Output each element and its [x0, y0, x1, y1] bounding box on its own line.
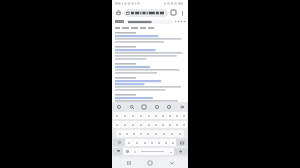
button[interactable]	[137, 121, 145, 128]
button[interactable]: Tabs	[169, 8, 178, 17]
button[interactable]	[180, 112, 187, 119]
button[interactable]: Home	[145, 158, 155, 168]
button[interactable]	[155, 139, 162, 146]
button[interactable]	[152, 121, 159, 128]
button[interactable]	[148, 26, 154, 30]
button[interactable]	[173, 121, 180, 128]
button[interactable]: Emoji	[115, 103, 122, 110]
button[interactable]	[160, 130, 168, 137]
button[interactable]	[166, 112, 173, 119]
button[interactable]	[115, 26, 120, 30]
button[interactable]	[152, 130, 160, 137]
button[interactable]	[176, 130, 184, 137]
button[interactable]	[148, 139, 155, 146]
button[interactable]: Settings	[165, 103, 172, 110]
button[interactable]	[167, 148, 174, 155]
button[interactable]: Search	[128, 103, 135, 110]
button[interactable]	[140, 26, 146, 30]
button[interactable]: Clipboard	[140, 103, 147, 110]
button[interactable]: Shift	[113, 139, 125, 146]
button[interactable]: Back	[167, 158, 177, 168]
button[interactable]: More options	[178, 9, 186, 17]
button[interactable]: Language	[123, 148, 131, 155]
button[interactable]	[137, 112, 145, 119]
button[interactable]	[141, 139, 148, 146]
button[interactable]: Backspace	[176, 139, 187, 146]
button[interactable]	[115, 32, 185, 46]
button[interactable]	[145, 121, 152, 128]
button[interactable]	[122, 26, 129, 30]
button[interactable]: More	[178, 103, 185, 110]
button[interactable]	[115, 77, 185, 94]
button[interactable]	[131, 148, 138, 155]
button[interactable]	[121, 121, 129, 128]
button[interactable]	[137, 130, 144, 137]
button[interactable]: Symbols	[113, 148, 123, 155]
button[interactable]	[126, 20, 173, 24]
button[interactable]: Space	[138, 148, 167, 155]
button[interactable]: Enter	[174, 148, 187, 155]
button[interactable]: Home	[114, 8, 123, 17]
button[interactable]	[131, 26, 138, 30]
button[interactable]	[129, 121, 137, 128]
button[interactable]	[130, 130, 137, 137]
button[interactable]	[133, 139, 141, 146]
button[interactable]	[115, 94, 185, 102]
button[interactable]	[116, 130, 123, 137]
button[interactable]	[152, 112, 159, 119]
button[interactable]	[121, 112, 129, 119]
button[interactable]	[169, 139, 176, 146]
button[interactable]	[124, 9, 168, 17]
button[interactable]	[129, 112, 137, 119]
button[interactable]	[113, 112, 121, 119]
button[interactable]	[159, 121, 166, 128]
button[interactable]	[162, 139, 169, 146]
button[interactable]: Recents	[124, 158, 134, 168]
button[interactable]	[166, 121, 173, 128]
button[interactable]	[145, 112, 152, 119]
button[interactable]	[115, 63, 185, 77]
button[interactable]	[159, 112, 166, 119]
button[interactable]	[115, 46, 185, 63]
button[interactable]	[173, 112, 180, 119]
button[interactable]: GIF	[153, 103, 160, 110]
button[interactable]	[180, 121, 187, 128]
button[interactable]	[144, 130, 152, 137]
button[interactable]	[168, 130, 176, 137]
button[interactable]	[113, 121, 121, 128]
button[interactable]	[123, 130, 130, 137]
button[interactable]	[125, 139, 133, 146]
